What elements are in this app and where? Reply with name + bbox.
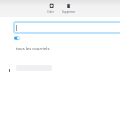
staticText: Créer: [47, 10, 54, 14]
button[interactable]: Supprimer: [60, 1, 79, 15]
other: Supprimer: [60, 1, 79, 15]
other: Créer: [44, 1, 59, 15]
staticText: Supprimer: [62, 10, 75, 14]
button[interactable]: Créer: [44, 1, 59, 15]
button[interactable]: [0, 62, 120, 74]
button[interactable]: [13, 21, 120, 34]
button[interactable]: tous les courriels: [16, 46, 50, 52]
button[interactable]: Activer: [12, 34, 22, 42]
